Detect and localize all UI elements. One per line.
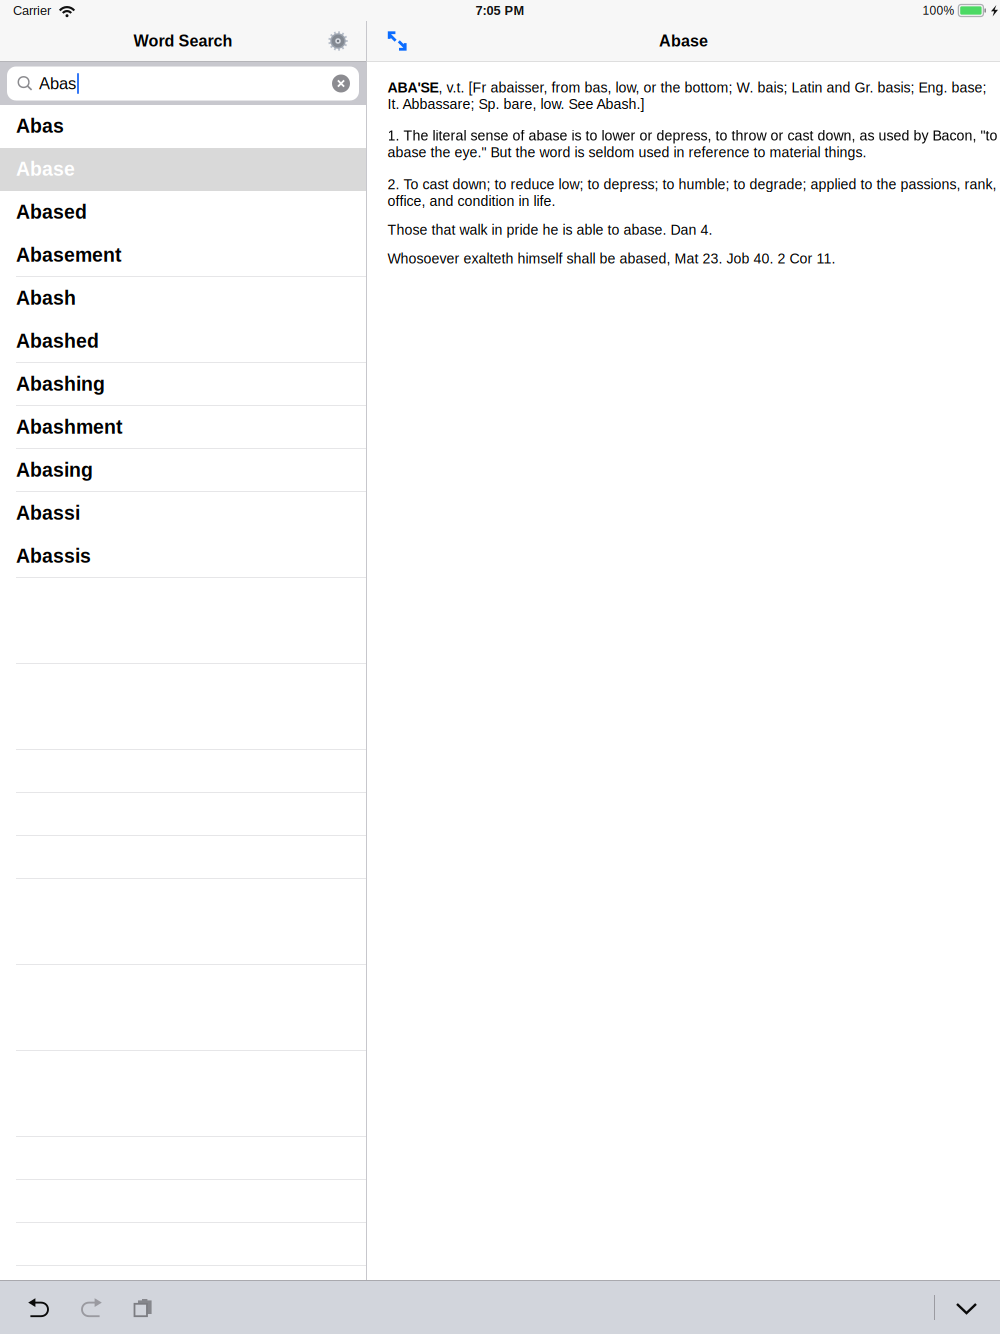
staticText: 7:05 PM (475, 3, 524, 18)
button[interactable]: Settings (319, 21, 357, 61)
button[interactable]: Abash (0, 277, 366, 320)
staticText: Whosoever exalteth himself shall be abas… (387, 251, 835, 266)
button[interactable]: Abasing (0, 449, 366, 492)
button[interactable]: Paste (117, 1281, 169, 1333)
staticText: Abassis (16, 545, 91, 567)
button[interactable]: Abasement (0, 234, 366, 277)
staticText: Carrier (13, 3, 51, 18)
staticText: Abasing (16, 459, 93, 481)
staticText: Word Search (133, 32, 232, 50)
staticText: Abase (16, 158, 75, 180)
button[interactable]: Redo (65, 1281, 117, 1333)
button[interactable]: Clear text (332, 74, 350, 92)
staticText: Abashing (16, 373, 105, 395)
button[interactable]: Abas (0, 105, 366, 148)
staticText: Abas (39, 74, 76, 93)
staticText: Abashed (16, 330, 99, 352)
button[interactable]: Expand (378, 20, 417, 61)
button[interactable]: Abashing (0, 363, 366, 406)
staticText: Abassi (16, 502, 80, 524)
staticText: Abashment (16, 416, 122, 438)
staticText: Those that walk in pride he is able to a… (387, 222, 712, 238)
staticText: 1. The literal sense of abase is to lowe… (387, 128, 997, 160)
staticText: ABA'SE, v.t. [Fr abaisser, from bas, low… (387, 80, 986, 112)
staticText: Abas (16, 115, 64, 137)
staticText: Abase (659, 32, 708, 50)
button[interactable]: Abassi (0, 492, 366, 535)
staticText: Abash (16, 287, 76, 309)
button[interactable]: Undo (13, 1281, 65, 1333)
staticText: 100% (922, 4, 954, 17)
button[interactable]: Abase (0, 148, 366, 191)
button[interactable]: Abassis (0, 535, 366, 578)
button[interactable]: Abashed (0, 320, 366, 363)
button[interactable]: Abased (0, 191, 366, 234)
staticText: 2. To cast down; to reduce low; to depre… (387, 176, 996, 209)
button[interactable]: Abashment (0, 406, 366, 449)
staticText: Abased (16, 201, 87, 223)
button[interactable]: Hide keyboard (935, 1281, 998, 1333)
staticText: Abasement (16, 244, 121, 266)
